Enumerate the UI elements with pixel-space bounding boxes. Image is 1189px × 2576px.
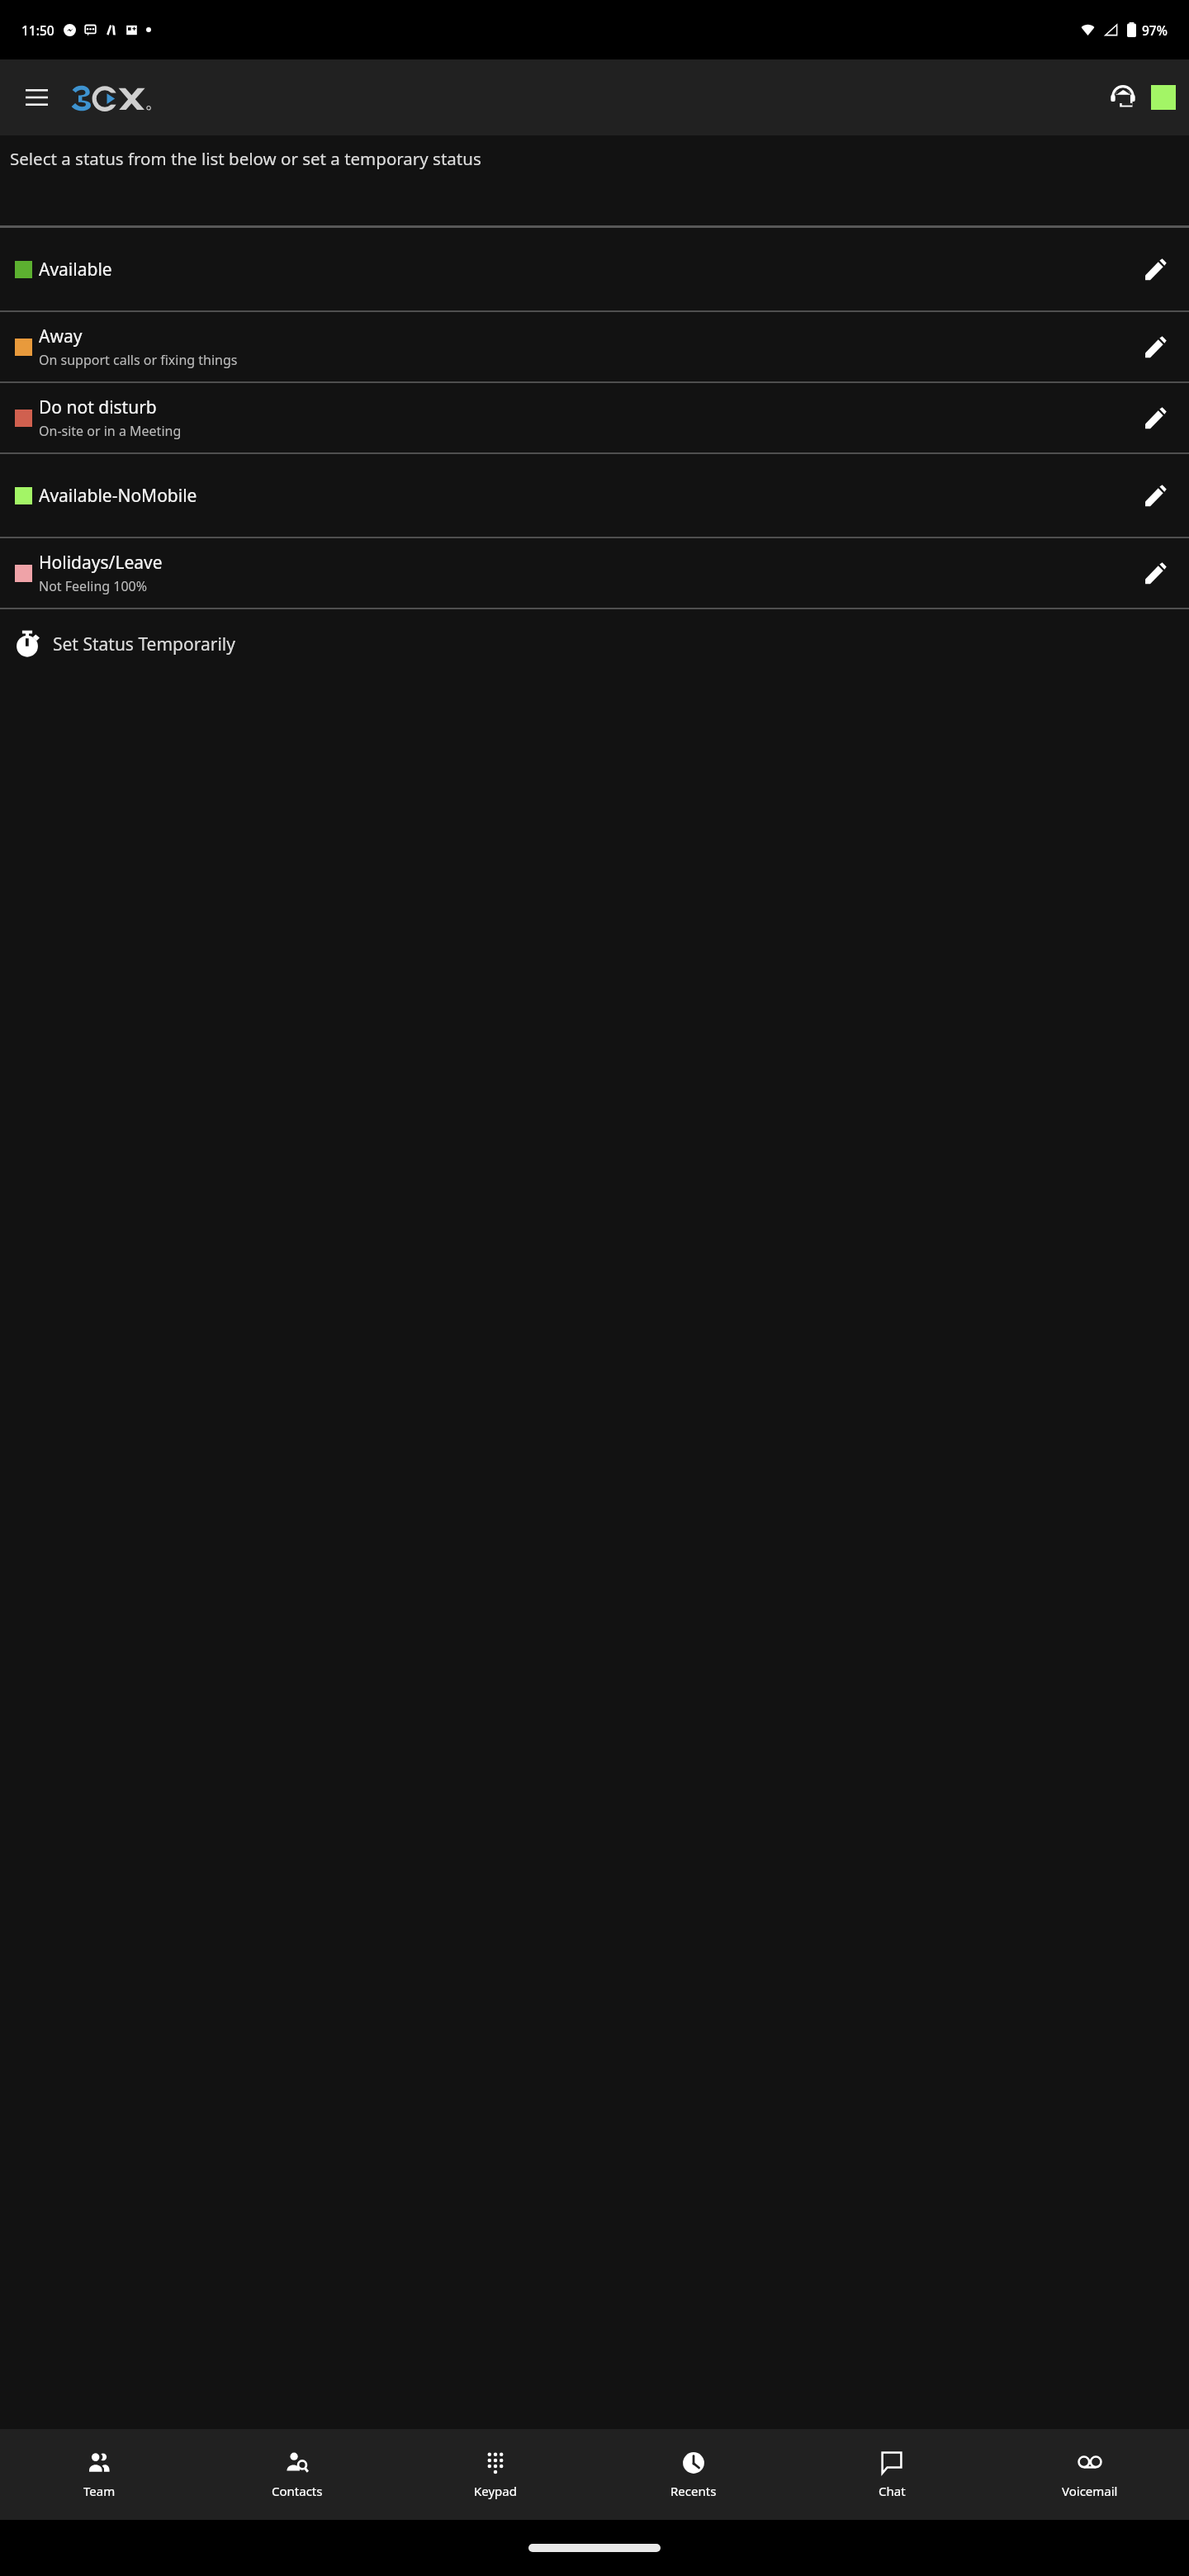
button[interactable]: Available-NoMobile [0, 454, 1189, 537]
button[interactable]: Agent status [1100, 74, 1146, 121]
staticText: Away [39, 324, 83, 348]
button[interactable]: Available [0, 228, 1189, 310]
button[interactable]: Holidays/Leave [0, 538, 1189, 608]
staticText: Set Status Temporarily [53, 632, 235, 656]
staticText: Team [83, 2483, 116, 2499]
staticText: Contacts [272, 2483, 323, 2499]
button[interactable]: Recents [594, 2429, 793, 2520]
button[interactable]: Contacts [198, 2429, 396, 2520]
button[interactable]: Edit Away [1131, 323, 1179, 371]
button[interactable]: Edit Available [1131, 245, 1179, 293]
staticText: On-site or in a Meeting [39, 422, 182, 440]
button[interactable]: Menu [13, 74, 59, 121]
button[interactable]: Voicemail [991, 2429, 1189, 2520]
staticText: Recents [670, 2483, 717, 2499]
button[interactable]: Team [0, 2429, 198, 2520]
staticText: Not Feeling 100% [39, 577, 148, 595]
button[interactable]: Keypad [396, 2429, 594, 2520]
button[interactable]: Chat [793, 2429, 991, 2520]
staticText: Select a status from the list below or s… [10, 147, 481, 170]
staticText: Chat [879, 2483, 906, 2499]
button[interactable]: Edit Available-NoMobile [1131, 471, 1179, 519]
staticText: 97% [1142, 21, 1168, 39]
button[interactable]: Away [0, 312, 1189, 381]
staticText: Do not disturb [39, 395, 157, 419]
staticText: Available-NoMobile [39, 484, 197, 508]
staticText: Holidays/Leave [39, 551, 163, 575]
staticText: On support calls or fixing things [39, 351, 238, 369]
staticText: 11:50 [21, 21, 54, 39]
staticText: Voicemail [1062, 2483, 1118, 2499]
button[interactable]: Edit Holidays/Leave [1131, 549, 1179, 597]
staticText: Available [39, 258, 112, 282]
button[interactable]: Set Status Temporarily [0, 609, 1189, 679]
staticText: Keypad [474, 2483, 517, 2499]
button[interactable]: Edit Do not disturb [1131, 394, 1179, 442]
button[interactable]: Current status Available [1151, 85, 1176, 110]
button[interactable]: Do not disturb [0, 383, 1189, 452]
